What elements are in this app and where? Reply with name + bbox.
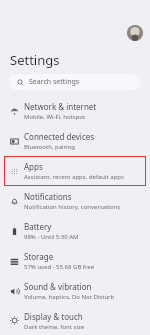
staticText: Storage: [24, 251, 54, 262]
button[interactable]: Account profile: [127, 25, 143, 41]
staticText: Apps: [24, 161, 43, 172]
button[interactable]: Search settings: [9, 74, 141, 90]
staticText: Mobile, Wi-Fi, hotspot: [24, 113, 86, 121]
staticText: Volume, haptics, Do Not Disturb: [24, 293, 115, 301]
staticText: 57% used - 55.68 GB free: [24, 263, 95, 271]
staticText: Notifications: [24, 191, 72, 202]
staticText: Display & touch: [24, 311, 83, 322]
staticText: Assistant, recent apps, default apps: [24, 173, 124, 181]
button[interactable]: Network & internet: [4, 96, 146, 126]
staticText: Dark theme, font size: [24, 323, 85, 331]
staticText: Bluetooth, pairing: [24, 143, 76, 151]
button[interactable]: Apps: [4, 156, 146, 186]
staticText: Sound & vibration: [24, 281, 92, 292]
staticText: Settings: [10, 51, 60, 69]
button[interactable]: Storage: [4, 246, 146, 276]
staticText: Battery: [24, 221, 52, 232]
staticText: Connected devices: [24, 131, 95, 142]
button[interactable]: Notifications: [4, 186, 146, 216]
staticText: 98% - Until 5:30 AM: [24, 233, 79, 241]
staticText: Search settings: [29, 77, 80, 87]
button[interactable]: Connected devices: [4, 126, 146, 156]
staticText: Notification history, conversations: [24, 203, 121, 211]
button[interactable]: Sound & vibration: [4, 276, 146, 306]
button[interactable]: Display & touch: [4, 306, 146, 335]
staticText: Network & internet: [24, 101, 97, 112]
button[interactable]: Battery: [4, 216, 146, 246]
